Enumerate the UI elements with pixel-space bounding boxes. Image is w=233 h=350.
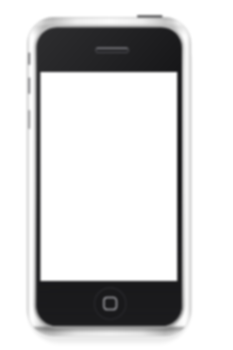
button[interactable]: Phone	[0, 0, 233, 350]
